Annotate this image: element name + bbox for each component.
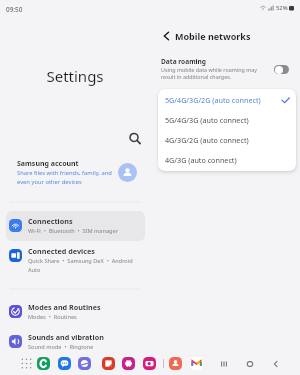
staticText: Modes • Routines <box>28 313 77 321</box>
button[interactable]: App 5 <box>143 357 156 370</box>
button[interactable]: App 2 <box>78 357 91 370</box>
button[interactable]: Back <box>158 28 174 44</box>
staticText: 4G/3G (auto connect) <box>165 155 237 165</box>
staticText: 5G/4G/3G/2G (auto connect) <box>165 95 261 105</box>
button[interactable]: App 7 <box>190 357 203 370</box>
button[interactable]: Samsung account <box>0 152 150 194</box>
button[interactable]: Back <box>269 357 282 370</box>
button[interactable]: App 1 <box>58 357 71 370</box>
button[interactable]: Modes and Routines <box>6 297 145 327</box>
button[interactable]: App 4 <box>122 357 135 370</box>
button[interactable]: 5G/4G/3G (auto connect) <box>158 110 296 130</box>
button[interactable]: 4G/3G/2G (auto connect) <box>158 130 296 150</box>
button[interactable]: 5G/4G/3G/2G (auto connect) <box>158 90 296 110</box>
staticText: Quick Share • Samsung DeX • Android Auto <box>28 257 143 273</box>
button[interactable]: App drawer <box>20 357 33 370</box>
button[interactable]: Search <box>125 129 143 147</box>
staticText: Samsung account <box>17 159 79 169</box>
button[interactable]: Data roaming <box>150 54 300 84</box>
staticText: Data roaming <box>161 57 207 66</box>
button[interactable]: Connections <box>6 211 145 241</box>
button[interactable]: App 3 <box>102 357 115 370</box>
staticText: Wi-Fi • Bluetooth • SIM manager <box>28 227 118 235</box>
staticText: 09:50 <box>6 5 23 14</box>
button[interactable]: Recents <box>217 357 230 370</box>
staticText: Using mobile data while roaming may resu… <box>161 66 263 80</box>
button[interactable]: App 0 <box>37 357 50 370</box>
button[interactable]: Connected devices <box>6 241 145 271</box>
staticText: 5G/4G/3G (auto connect) <box>165 115 249 125</box>
staticText: Connections <box>28 216 73 226</box>
staticText: Sounds and vibration <box>28 332 104 342</box>
staticText: Sound mode • Ringtone <box>28 343 94 351</box>
staticText: Settings <box>0 66 150 86</box>
button[interactable]: App 6 <box>169 357 182 370</box>
button[interactable]: Home <box>243 357 256 370</box>
staticText: 52% <box>276 4 288 12</box>
staticText: Mobile networks <box>175 30 251 42</box>
staticText: Connected devices <box>28 246 95 256</box>
staticText: Modes and Routines <box>28 302 101 312</box>
staticText: 4G/3G/2G (auto connect) <box>165 135 249 145</box>
button[interactable]: Data roaming toggle <box>274 65 289 74</box>
button[interactable]: 4G/3G (auto connect) <box>158 150 296 170</box>
button[interactable]: Sounds and vibration <box>6 327 145 357</box>
staticText: Share files with friends, family, and ev… <box>17 169 112 186</box>
